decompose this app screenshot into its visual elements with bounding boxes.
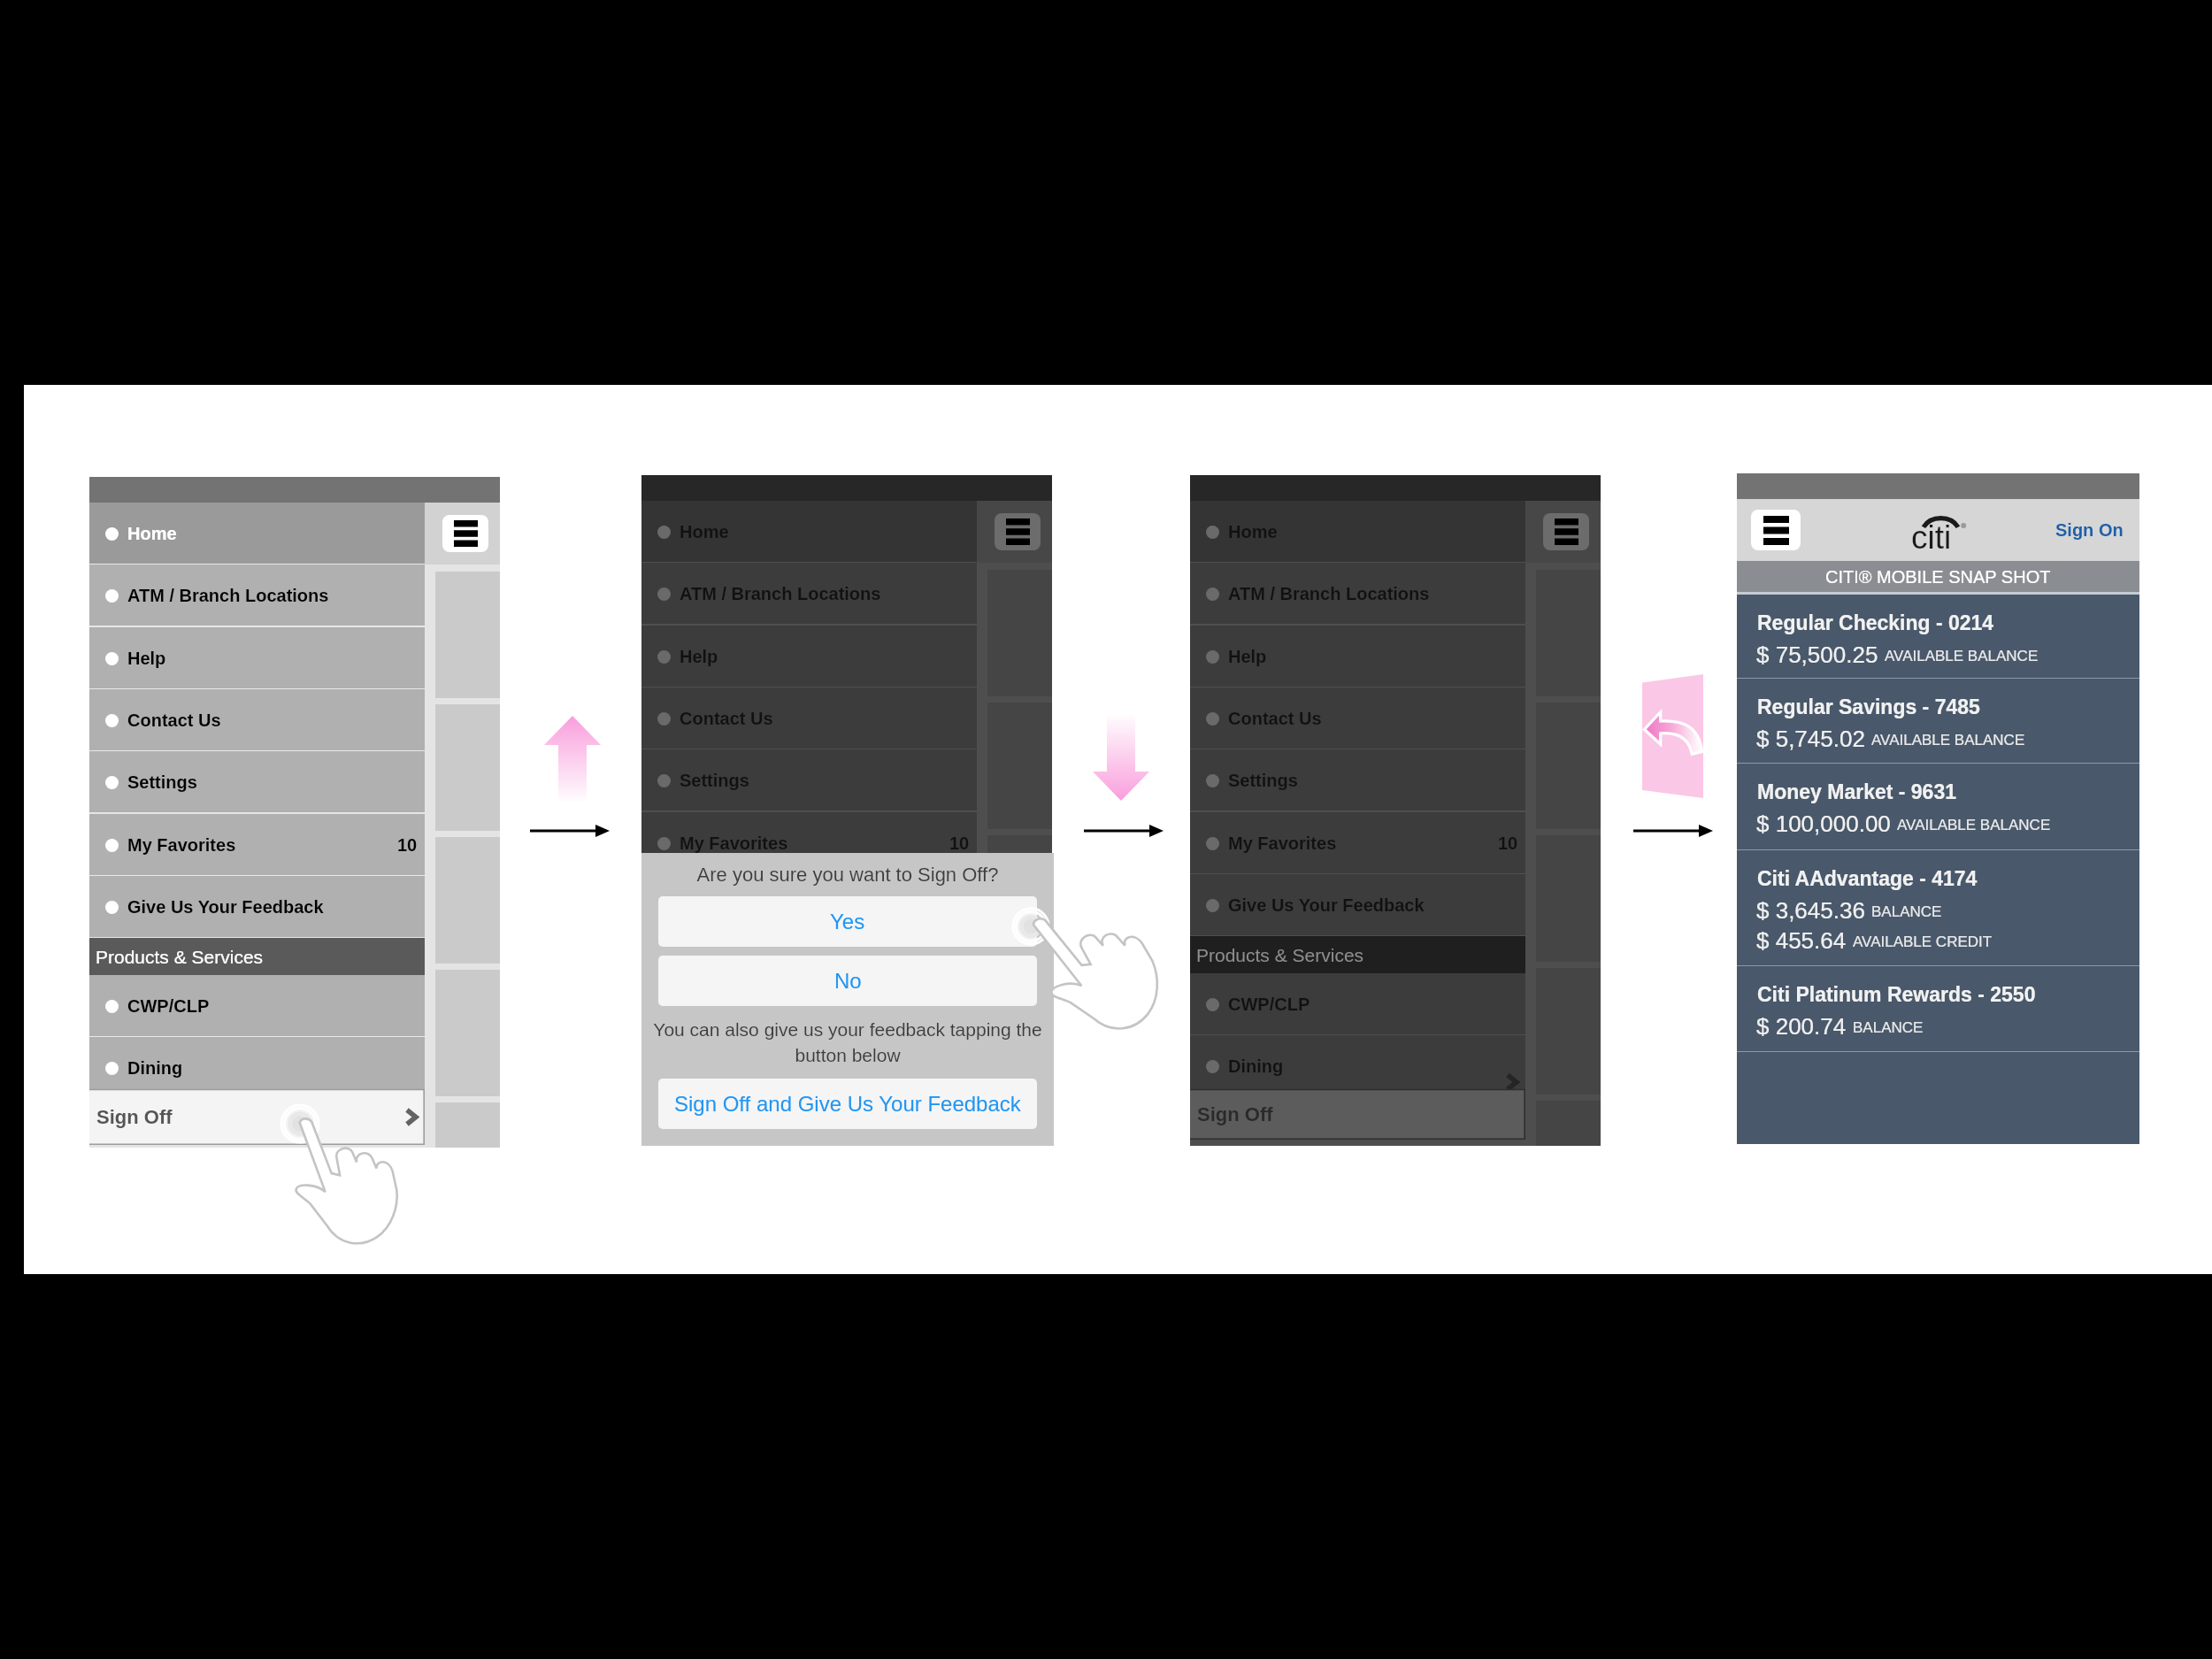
staticText: Are you sure you want to Sign Off?: [641, 864, 1054, 886]
button[interactable]: Give Us Your Feedback: [89, 876, 425, 937]
button[interactable]: Citi Platinum Rewards - 2550: [1737, 966, 2139, 1052]
button[interactable]: Open navigation menu: [1543, 513, 1589, 550]
staticText: Dining: [1228, 1056, 1284, 1076]
button[interactable]: My Favorites: [89, 814, 425, 875]
staticText: $ 75,500.25: [1756, 641, 1878, 667]
staticText: BALANCE: [1853, 1019, 1924, 1036]
button[interactable]: Help: [1190, 626, 1525, 687]
staticText: Help: [127, 649, 166, 668]
staticText: CITI® MOBILE SNAP SHOT: [1825, 567, 2051, 587]
staticText: Citi AAdvantage - 4174: [1757, 867, 1978, 890]
staticText: CWP/CLP: [680, 995, 762, 1014]
button[interactable]: ATM / Branch Locations: [89, 565, 425, 626]
staticText: Sign Off: [96, 1106, 173, 1128]
staticText: Contact Us: [680, 709, 773, 728]
staticText: Money Market - 9631: [1757, 780, 1956, 803]
staticText: Sign Off: [1197, 1103, 1273, 1125]
staticText: Give Us Your Feedback: [1228, 895, 1425, 915]
button[interactable]: CWP/CLP: [1190, 973, 1525, 1034]
staticText: Give Us Your Feedback: [127, 897, 324, 917]
button[interactable]: Products & Services: [641, 936, 977, 973]
button[interactable]: Give Us Your Feedback: [1190, 874, 1525, 935]
staticText: 10: [397, 835, 418, 855]
staticText: AVAILABLE BALANCE: [1897, 817, 2051, 833]
button[interactable]: Dining: [641, 1035, 977, 1096]
button[interactable]: Help: [641, 626, 977, 687]
staticText: Yes: [830, 910, 865, 933]
staticText: Products & Services: [1196, 945, 1364, 965]
staticText: Sign On: [2055, 520, 2124, 540]
staticText: 10: [949, 833, 970, 853]
staticText: You can also give us your feedback tappi…: [641, 1019, 1054, 1066]
staticText: ATM / Branch Locations: [1228, 584, 1430, 603]
staticText: $ 3,645.36: [1756, 897, 1865, 923]
button[interactable]: Regular Savings - 7485: [1737, 679, 2139, 764]
staticText: BALANCE: [1871, 903, 1942, 920]
button[interactable]: Dining: [1190, 1035, 1525, 1096]
button[interactable]: ATM / Branch Locations: [641, 563, 977, 624]
staticText: No: [834, 969, 862, 993]
button[interactable]: Home: [89, 503, 425, 564]
staticText: $ 200.74: [1756, 1013, 1847, 1039]
staticText: Products & Services: [96, 947, 264, 967]
staticText: ATM / Branch Locations: [680, 584, 881, 603]
button[interactable]: Contact Us: [641, 687, 977, 749]
staticText: Home: [1228, 522, 1278, 541]
button[interactable]: No: [658, 956, 1037, 1006]
button[interactable]: Contact Us: [89, 689, 425, 750]
button[interactable]: Sign Off and Give Us Your Feedback: [658, 1079, 1037, 1129]
staticText: My Favorites: [680, 833, 788, 853]
staticText: 10: [1498, 833, 1518, 853]
button[interactable]: Products & Services: [89, 938, 425, 975]
button[interactable]: Sign On: [2055, 520, 2124, 540]
button[interactable]: Help: [89, 627, 425, 688]
staticText: Dining: [127, 1058, 183, 1078]
staticText: AVAILABLE BALANCE: [1885, 648, 2039, 664]
button[interactable]: Open navigation menu: [995, 513, 1041, 550]
button[interactable]: Citi AAdvantage - 4174: [1737, 850, 2139, 966]
staticText: Settings: [1228, 771, 1298, 790]
button[interactable]: Yes: [658, 896, 1037, 947]
staticText: Help: [680, 647, 718, 666]
button[interactable]: Settings: [1190, 749, 1525, 810]
button[interactable]: ATM / Branch Locations: [1190, 563, 1525, 624]
staticText: $ 100,000.00: [1756, 810, 1891, 836]
button[interactable]: Regular Checking - 0214: [1737, 595, 2139, 679]
staticText: AVAILABLE BALANCE: [1871, 732, 2025, 749]
button[interactable]: Home: [641, 501, 977, 562]
staticText: AVAILABLE CREDIT: [1853, 933, 1993, 950]
staticText: CWP/CLP: [127, 996, 210, 1016]
button[interactable]: Settings: [641, 749, 977, 810]
staticText: Home: [680, 522, 729, 541]
button[interactable]: Home: [1190, 501, 1525, 562]
button[interactable]: Give Us Your Feedback: [641, 874, 977, 935]
button[interactable]: Open navigation menu: [1751, 510, 1801, 550]
staticText: Home: [127, 524, 177, 543]
staticText: Contact Us: [127, 710, 221, 730]
button[interactable]: Contact Us: [1190, 687, 1525, 749]
button[interactable]: Sign Off: [641, 1089, 977, 1140]
button[interactable]: Products & Services: [1190, 936, 1525, 973]
button[interactable]: My Favorites: [1190, 812, 1525, 873]
button[interactable]: Open navigation menu: [442, 515, 488, 552]
button[interactable]: Sign Off: [1190, 1089, 1525, 1140]
button[interactable]: CWP/CLP: [89, 975, 425, 1036]
staticText: citi: [1911, 519, 1952, 556]
button[interactable]: My Favorites: [641, 812, 977, 873]
staticText: Regular Savings - 7485: [1757, 695, 1980, 718]
staticText: CWP/CLP: [1228, 995, 1310, 1014]
staticText: $ 455.64: [1756, 927, 1847, 953]
button[interactable]: CWP/CLP: [641, 973, 977, 1034]
staticText: Sign Off: [649, 1103, 725, 1125]
staticText: Give Us Your Feedback: [680, 895, 876, 915]
button[interactable]: Dining: [89, 1037, 425, 1098]
button[interactable]: Money Market - 9631: [1737, 764, 2139, 850]
staticText: Products & Services: [648, 945, 816, 965]
staticText: My Favorites: [127, 835, 236, 855]
staticText: ATM / Branch Locations: [127, 586, 329, 605]
button[interactable]: Settings: [89, 751, 425, 812]
staticText: Regular Checking - 0214: [1757, 611, 1994, 634]
staticText: Settings: [127, 772, 197, 792]
button[interactable]: Sign Off: [89, 1089, 425, 1145]
